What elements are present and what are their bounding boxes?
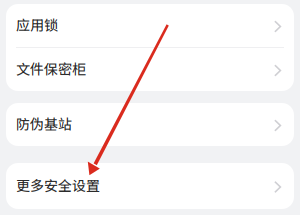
button[interactable]: 更多安全设置 [6, 163, 294, 209]
staticText: 文件保密柜 [16, 58, 86, 79]
button[interactable]: 防伪基站 [6, 103, 294, 146]
button[interactable]: 文件保密柜 [6, 48, 294, 91]
staticText: 更多安全设置 [16, 175, 100, 195]
staticText: 应用锁 [16, 14, 58, 35]
button[interactable]: 应用锁 [6, 4, 294, 47]
staticText: 防伪基站 [16, 113, 72, 134]
